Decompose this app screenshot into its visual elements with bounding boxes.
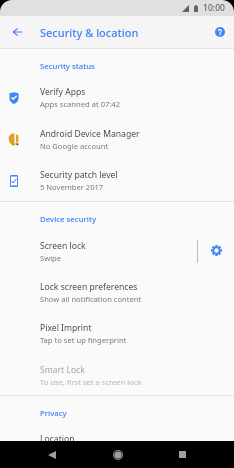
- staticText: On: [40, 446, 51, 456]
- button[interactable]: Android Device Manager: [0, 119, 234, 160]
- button[interactable]: Pixel Imprint: [0, 313, 234, 354]
- button[interactable]: Location: [0, 424, 234, 465]
- staticText: Apps scanned at 07:42: [40, 99, 121, 109]
- button[interactable]: Help: [202, 16, 234, 48]
- staticText: Lock screen preferences: [40, 281, 138, 293]
- staticText: Screen lock: [40, 240, 86, 252]
- button[interactable]: Security patch level: [0, 160, 234, 201]
- button[interactable]: Verify Apps: [0, 77, 234, 118]
- button[interactable]: Smart Lock: [0, 355, 234, 396]
- staticText: To use, first set a screen lock: [40, 377, 142, 387]
- staticText: 10:00: [203, 2, 226, 14]
- staticText: Smart Lock: [40, 364, 85, 376]
- staticText: No Google account: [40, 141, 109, 151]
- staticText: Privacy: [40, 408, 67, 419]
- button[interactable]: Back: [38, 441, 65, 468]
- button[interactable]: Navigate up: [0, 16, 32, 48]
- staticText: Show all notification content: [40, 294, 142, 304]
- button[interactable]: Home: [104, 441, 131, 468]
- button[interactable]: Lock screen preferences: [0, 272, 234, 313]
- staticText: Security status: [40, 61, 95, 72]
- staticText: 5 November 2017: [40, 182, 104, 192]
- staticText: Swipe: [40, 253, 62, 263]
- button[interactable]: Screen lock settings: [198, 231, 234, 272]
- staticText: Verify Apps: [40, 86, 86, 98]
- staticText: Security & location: [40, 25, 139, 40]
- staticText: Device security: [40, 214, 97, 225]
- staticText: Android Device Manager: [40, 128, 140, 140]
- staticText: Location: [40, 433, 75, 445]
- staticText: Security patch level: [40, 169, 118, 181]
- button[interactable]: Recent apps: [169, 441, 196, 468]
- staticText: Tap to set up fingerprint: [40, 335, 127, 345]
- button[interactable]: Screen lock: [0, 231, 234, 272]
- staticText: Pixel Imprint: [40, 322, 92, 334]
